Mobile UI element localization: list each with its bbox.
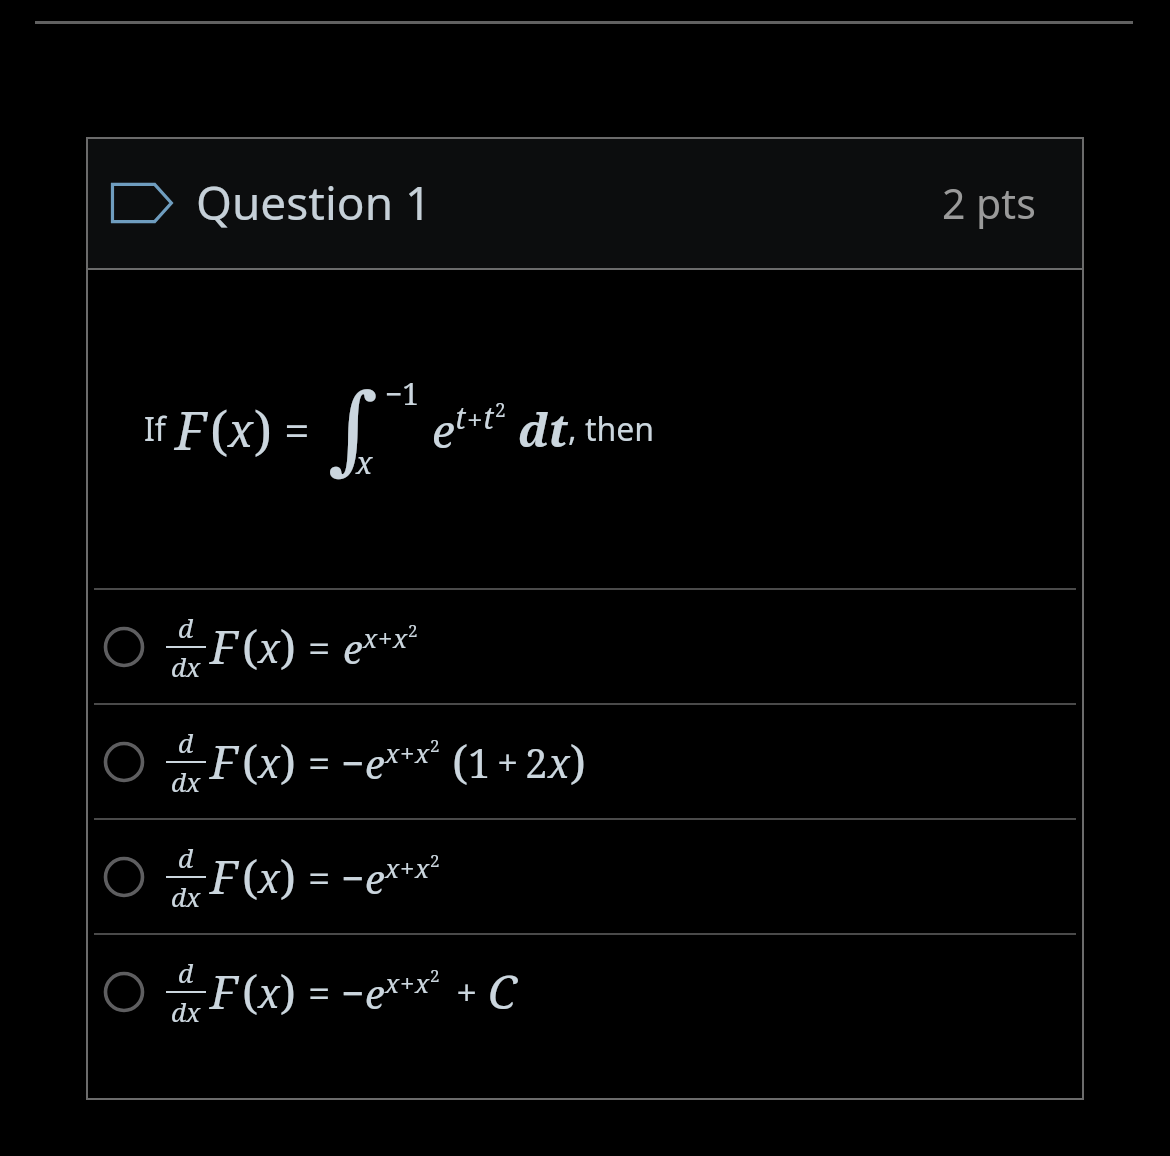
staticText: d: [178, 610, 194, 645]
staticText: e: [432, 399, 455, 462]
staticText: x: [393, 620, 408, 655]
staticText: +: [497, 736, 519, 788]
staticText: ): [280, 845, 296, 908]
staticText: C: [488, 960, 517, 1023]
staticText: dt: [518, 398, 568, 461]
staticText: x: [258, 735, 280, 789]
staticText: (: [452, 730, 468, 793]
staticText: (: [242, 730, 258, 793]
staticText: +: [400, 735, 415, 770]
staticText: +: [378, 620, 393, 655]
staticText: x: [356, 442, 373, 483]
staticText: −: [341, 965, 365, 1019]
staticText: x: [258, 620, 280, 674]
staticText: x: [415, 965, 430, 1000]
staticText: ): [570, 730, 586, 793]
staticText: =: [308, 850, 331, 904]
staticText: (: [242, 960, 258, 1023]
staticText: t: [455, 397, 467, 438]
staticText: If: [144, 407, 175, 451]
staticText: x: [258, 965, 280, 1019]
staticText: F: [210, 615, 238, 678]
button[interactable]: Flag question: [110, 174, 172, 232]
staticText: d: [178, 725, 194, 760]
staticText: 1: [468, 735, 491, 789]
button[interactable]: d: [86, 820, 1084, 933]
staticText: F: [210, 730, 238, 793]
staticText: F: [210, 960, 238, 1023]
staticText: x: [548, 735, 570, 789]
staticText: =: [284, 398, 310, 461]
staticText: 2: [430, 964, 440, 987]
staticText: 2: [430, 849, 440, 872]
staticText: ): [280, 730, 296, 793]
staticText: F: [175, 394, 206, 465]
staticText: x: [228, 398, 254, 461]
staticText: x: [415, 850, 430, 885]
staticText: dx: [171, 764, 201, 799]
staticText: 2: [525, 735, 548, 789]
staticText: e: [365, 966, 385, 1020]
staticText: =: [308, 620, 331, 674]
button[interactable]: d: [86, 705, 1084, 818]
staticText: x: [385, 735, 400, 770]
button[interactable]: d: [86, 935, 1084, 1048]
staticText: dx: [171, 879, 201, 914]
staticText: , then: [568, 407, 655, 451]
staticText: (: [242, 845, 258, 908]
staticText: 2 pts: [942, 175, 1036, 231]
staticText: d: [178, 955, 194, 990]
staticText: x: [258, 850, 280, 904]
staticText: ): [254, 394, 272, 465]
staticText: x: [385, 850, 400, 885]
staticText: e: [365, 736, 385, 790]
staticText: +: [400, 965, 415, 1000]
staticText: dx: [171, 994, 201, 1029]
staticText: F: [210, 845, 238, 908]
staticText: e: [343, 621, 363, 675]
staticText: Question 1: [196, 171, 432, 234]
staticText: =: [308, 965, 331, 1019]
staticText: 2: [430, 734, 440, 757]
staticText: +: [400, 850, 415, 885]
staticText: 2: [495, 397, 506, 423]
staticText: −: [341, 850, 365, 904]
staticText: d: [178, 840, 194, 875]
staticText: x: [385, 965, 400, 1000]
staticText: −1: [385, 373, 420, 414]
staticText: x: [415, 735, 430, 770]
staticText: t: [483, 397, 495, 438]
staticText: +: [467, 400, 483, 438]
staticText: e: [365, 851, 385, 905]
button[interactable]: d: [86, 590, 1084, 703]
staticText: −: [341, 735, 365, 789]
staticText: x: [363, 620, 378, 655]
staticText: ): [280, 960, 296, 1023]
staticText: (: [242, 615, 258, 678]
staticText: =: [308, 735, 331, 789]
staticText: ): [280, 615, 296, 678]
staticText: dx: [171, 649, 201, 684]
staticText: ∫: [328, 373, 379, 485]
staticText: 2: [408, 619, 418, 642]
staticText: +: [456, 966, 478, 1018]
staticText: (: [210, 394, 228, 465]
